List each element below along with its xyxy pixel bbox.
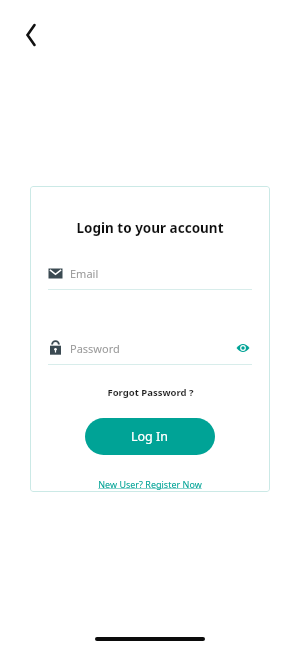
button[interactable]: Back — [14, 18, 48, 52]
button[interactable]: Email — [48, 260, 252, 286]
staticText: Password — [70, 341, 120, 356]
staticText: Login to your account — [30, 219, 270, 237]
button[interactable]: Log In — [85, 418, 215, 455]
staticText: Forgot Password ? — [107, 386, 194, 399]
button[interactable]: Show password — [234, 339, 252, 357]
staticText: Log In — [131, 428, 169, 445]
button[interactable]: New User? Register Now — [30, 478, 270, 490]
button[interactable]: Forgot Password ? — [30, 386, 270, 399]
button[interactable]: Password — [48, 335, 252, 361]
staticText: Email — [70, 266, 99, 281]
staticText: New User? Register Now — [98, 478, 202, 490]
